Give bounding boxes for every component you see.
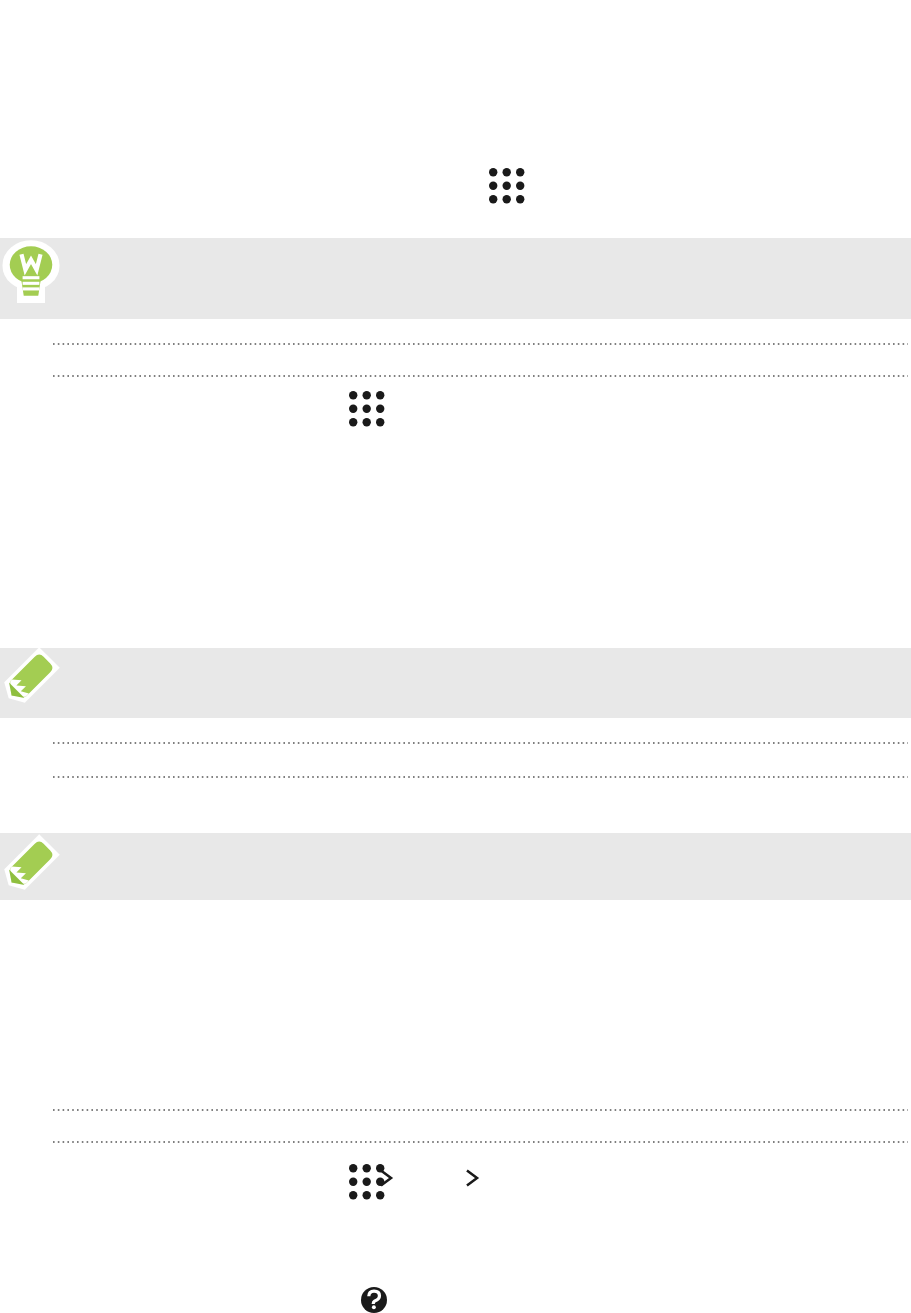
button[interactable]: Help (360, 1286, 388, 1313)
button[interactable]: All apps (346, 1161, 379, 1194)
button[interactable]: All apps (486, 165, 519, 198)
button[interactable]: All apps (346, 388, 379, 421)
